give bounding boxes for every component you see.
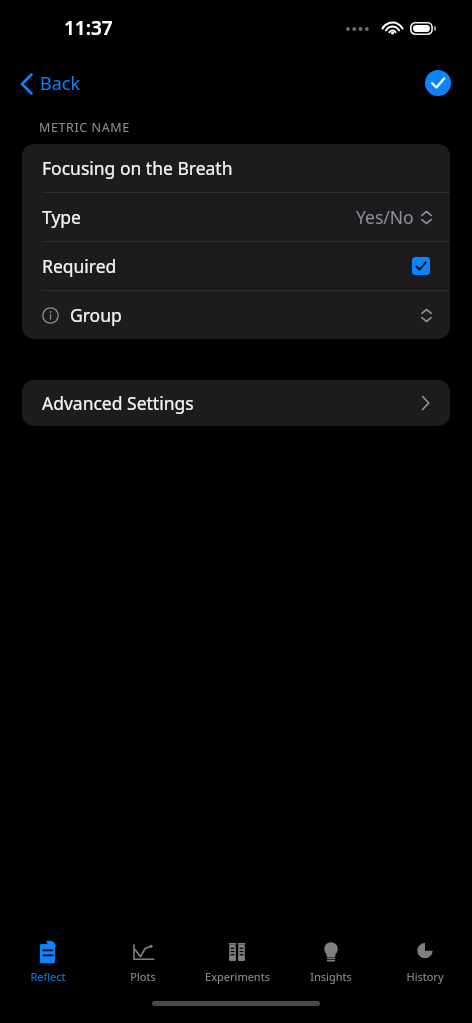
button[interactable]: Group bbox=[22, 291, 450, 339]
staticText: Group bbox=[70, 303, 122, 327]
staticText: Back bbox=[40, 71, 81, 96]
staticText: Experiments bbox=[205, 969, 270, 984]
staticText: Required bbox=[42, 254, 117, 278]
button[interactable]: Experiments bbox=[190, 935, 284, 988]
staticText: Yes/No bbox=[356, 205, 414, 229]
staticText: Advanced Settings bbox=[42, 391, 194, 415]
button[interactable]: Required bbox=[22, 242, 450, 290]
staticText: Focusing on the Breath bbox=[42, 156, 233, 180]
button[interactable]: Advanced Settings bbox=[22, 380, 450, 426]
button[interactable]: Plots bbox=[95, 935, 190, 988]
staticText: 11:37 bbox=[64, 15, 113, 41]
staticText: METRIC NAME bbox=[39, 119, 130, 136]
staticText: History bbox=[406, 969, 444, 984]
staticText: Type bbox=[42, 205, 81, 229]
button[interactable]: Back bbox=[16, 67, 91, 100]
button[interactable]: Focusing on the Breath bbox=[22, 144, 450, 192]
button[interactable]: Confirm bbox=[425, 70, 451, 96]
button[interactable]: Reflect bbox=[0, 935, 95, 988]
button[interactable]: Insights bbox=[284, 935, 378, 988]
button[interactable]: History bbox=[378, 935, 472, 988]
button[interactable]: Type bbox=[22, 193, 450, 241]
staticText: Plots bbox=[130, 969, 156, 984]
staticText: Insights bbox=[310, 969, 352, 984]
staticText: Reflect bbox=[30, 969, 66, 984]
